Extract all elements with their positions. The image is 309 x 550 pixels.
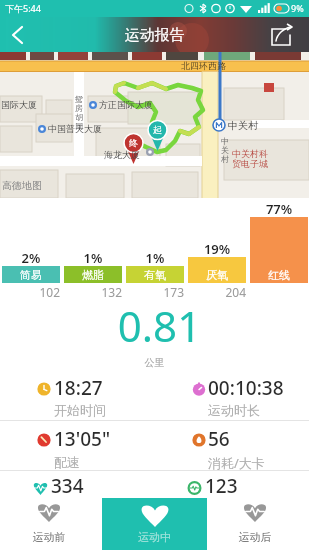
button[interactable]: 运动前: [14, 497, 84, 550]
staticText: 中关村科 贸电子城: [232, 148, 268, 170]
staticText: 有氧: [126, 268, 184, 282]
staticText: 鸳 房 胡 同: [75, 94, 83, 131]
staticText: 运动后: [220, 530, 290, 544]
staticText: 334: [51, 473, 84, 499]
staticText: 简易: [2, 268, 60, 282]
staticText: 132: [90, 284, 122, 300]
staticText: 中关村: [228, 119, 258, 132]
staticText: 公里: [0, 356, 309, 369]
staticText: 消耗/大卡: [208, 454, 265, 472]
staticText: 下午5:44: [5, 2, 41, 14]
staticText: 102: [28, 284, 60, 300]
staticText: 19%: [188, 240, 246, 258]
staticText: 1%: [64, 249, 122, 267]
staticText: 123: [205, 473, 238, 499]
staticText: 中国普天大厦: [48, 123, 102, 134]
staticText: 国际大厦: [1, 99, 37, 110]
staticText: 9%: [291, 2, 304, 14]
staticText: 燃脂: [64, 268, 122, 282]
staticText: 2%: [2, 249, 60, 267]
staticText: 开始时间: [54, 402, 106, 418]
button[interactable]: [262, 17, 306, 52]
button[interactable]: [64, 266, 122, 283]
button[interactable]: [2, 266, 60, 283]
staticText: 1%: [126, 249, 184, 267]
staticText: 0.81: [5, 297, 309, 354]
staticText: 厌氧: [188, 268, 246, 282]
staticText: 运动前: [14, 530, 84, 544]
staticText: 77%: [250, 200, 308, 218]
staticText: 00:10:38: [208, 375, 284, 401]
staticText: 方正国际大厦: [99, 99, 153, 110]
staticText: 56: [208, 426, 230, 452]
staticText: 204: [214, 284, 246, 300]
staticText: 起: [153, 124, 162, 135]
staticText: 海龙大厦: [104, 149, 140, 160]
staticText: 中 关 村: [221, 136, 229, 164]
staticText: 终: [129, 137, 138, 148]
staticText: 高德地图: [2, 179, 42, 192]
staticText: 13'05": [54, 426, 111, 452]
staticText: 红线: [250, 268, 308, 282]
button[interactable]: [250, 217, 308, 283]
staticText: 18:27: [54, 375, 103, 401]
button[interactable]: 运动后: [220, 497, 290, 550]
staticText: 运动时长: [208, 402, 260, 418]
staticText: 配速: [54, 454, 80, 470]
staticText: 运动报告: [0, 26, 309, 45]
staticText: 北四环西路: [181, 60, 226, 71]
button[interactable]: 北四环西路: [0, 52, 309, 198]
button[interactable]: [0, 17, 40, 52]
staticText: 运动中: [102, 530, 207, 544]
button[interactable]: [188, 257, 246, 283]
staticText: 173: [152, 284, 184, 300]
button[interactable]: [126, 266, 184, 283]
button[interactable]: 运动中: [102, 498, 207, 550]
